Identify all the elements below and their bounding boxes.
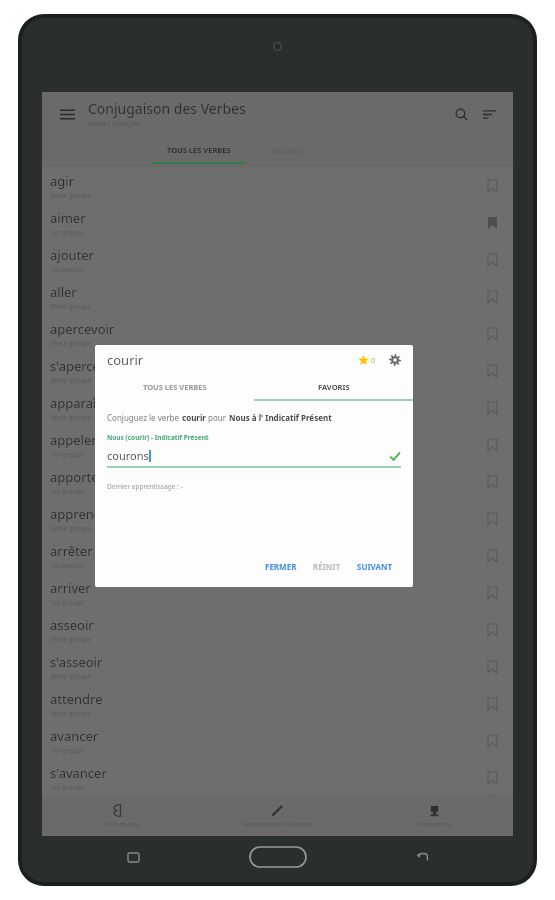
staticText: arriver	[50, 579, 91, 597]
button[interactable]: Recents	[116, 840, 150, 874]
staticText: s'asseoir	[50, 653, 103, 671]
staticText: FERMER	[265, 561, 297, 572]
button[interactable]: arriver	[42, 574, 513, 611]
button[interactable]: Choix de livre	[42, 796, 199, 836]
button[interactable]: apporter	[42, 463, 513, 500]
button[interactable]: Bookmark s'apercevoir	[479, 358, 505, 384]
button[interactable]: Bookmark agir	[479, 173, 505, 199]
staticText: 3ème groupe	[50, 339, 91, 348]
button[interactable]: aller	[42, 278, 513, 315]
button[interactable]: Open navigation menu	[52, 99, 82, 129]
button[interactable]: Score	[358, 355, 376, 366]
button[interactable]: Back	[405, 840, 439, 874]
button[interactable]: FERMER	[257, 556, 305, 577]
staticText: 1er groupe	[50, 487, 84, 496]
staticText: asseoir	[50, 616, 94, 634]
staticText: Nous (courir) - Indicatif Présent	[107, 433, 209, 442]
button[interactable]: s'asseoir	[42, 648, 513, 685]
button[interactable]: attendre	[42, 685, 513, 722]
button[interactable]: apparaître	[42, 389, 513, 426]
staticText: courons	[107, 448, 149, 463]
staticText: s'apercevoir	[50, 357, 123, 375]
staticText: Nous à l' Indicatif Présent	[229, 412, 332, 423]
button[interactable]: RÉINIT	[305, 556, 349, 577]
staticText: 0	[371, 356, 376, 366]
staticText: FAVORIS	[272, 146, 304, 156]
staticText: Dernier apprentissage : -	[107, 482, 183, 491]
staticText: s'avancer	[50, 764, 107, 782]
button[interactable]: Bookmark apercevoir	[479, 321, 505, 347]
staticText: attendre	[50, 690, 103, 708]
staticText: apparaître	[50, 394, 114, 412]
staticText: 3ème groupe	[50, 413, 91, 422]
staticText: 3ème groupe	[50, 191, 91, 200]
staticText: Propositions	[417, 820, 453, 828]
staticText: Verbes Français	[88, 119, 140, 129]
staticText: Apprentissage d'écriture	[243, 820, 312, 828]
staticText: agir	[50, 172, 75, 190]
button[interactable]: Bookmark aimer	[479, 210, 505, 236]
staticText: avancer	[50, 727, 99, 745]
staticText: appeler	[50, 431, 97, 449]
button[interactable]: agir	[42, 167, 513, 204]
staticText: 3ème groupe	[50, 524, 91, 533]
button[interactable]: Settings	[385, 350, 405, 370]
button[interactable]: aimer	[42, 204, 513, 241]
button[interactable]: Home	[248, 844, 308, 870]
staticText: aller	[50, 283, 77, 301]
button[interactable]: TOUS LES VERBES	[95, 375, 254, 399]
button[interactable]: Bookmark arriver	[479, 580, 505, 606]
staticText: RÉINIT	[313, 561, 341, 572]
button[interactable]: s'apercevoir	[42, 352, 513, 389]
staticText: 1er groupe	[50, 598, 84, 607]
staticText: TOUS LES VERBES	[167, 145, 231, 155]
button[interactable]: avancer	[42, 722, 513, 759]
button[interactable]: Bookmark s'asseoir	[479, 654, 505, 680]
staticText: 3ème groupe	[50, 302, 91, 311]
staticText: 3ème groupe	[50, 672, 91, 681]
staticText: 1er groupe	[50, 265, 84, 274]
button[interactable]: Bookmark apparaître	[479, 395, 505, 421]
button[interactable]: FAVORIS	[254, 375, 413, 399]
staticText: 1er groupe	[50, 783, 84, 792]
staticText: TOUS LES VERBES	[143, 382, 207, 392]
staticText: Conjuguez le verbe	[107, 412, 182, 423]
staticText: 3ème groupe	[50, 635, 91, 644]
staticText: apporter	[50, 468, 104, 486]
button[interactable]: ajouter	[42, 241, 513, 278]
staticText: courir	[107, 351, 144, 369]
button[interactable]: Bookmark apporter	[479, 469, 505, 495]
button[interactable]: Bookmark asseoir	[479, 617, 505, 643]
button[interactable]: Bookmark avancer	[479, 728, 505, 754]
staticText: SUIVANT	[357, 561, 393, 572]
button[interactable]: Bookmark appeler	[479, 432, 505, 458]
button[interactable]: appeler	[42, 426, 513, 463]
staticText: aimer	[50, 209, 86, 227]
staticText: 1er groupe	[50, 450, 84, 459]
staticText: 1er groupe	[50, 746, 84, 755]
button[interactable]: Bookmark s'avancer	[479, 765, 505, 791]
button[interactable]: Propositions	[356, 796, 513, 836]
button[interactable]: Bookmark aller	[479, 284, 505, 310]
staticText: pour	[206, 412, 229, 423]
button[interactable]: asseoir	[42, 611, 513, 648]
button[interactable]: SUIVANT	[349, 556, 401, 577]
staticText: 3ème groupe	[50, 376, 91, 385]
button[interactable]: Bookmark apprendre	[479, 506, 505, 532]
button[interactable]: arrêter	[42, 537, 513, 574]
button[interactable]: Bookmark attendre	[479, 691, 505, 717]
staticText: courir	[182, 412, 206, 423]
staticText: 1er groupe	[50, 228, 84, 237]
button[interactable]: Bookmark arrêter	[479, 543, 505, 569]
button[interactable]: apprendre	[42, 500, 513, 537]
button[interactable]: Sort	[475, 100, 503, 128]
staticText: 1er groupe	[50, 561, 84, 570]
button[interactable]: Apprentissage d'écriture	[199, 796, 356, 836]
button[interactable]: Bookmark ajouter	[479, 247, 505, 273]
button[interactable]: Search	[447, 100, 475, 128]
staticText: FAVORIS	[318, 382, 350, 392]
button[interactable]: apercevoir	[42, 315, 513, 352]
button[interactable]: TOUS LES VERBES	[152, 135, 246, 167]
button[interactable]: s'avancer	[42, 759, 513, 796]
